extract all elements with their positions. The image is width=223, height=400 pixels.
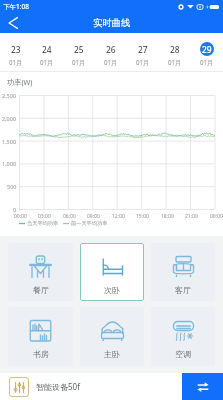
button[interactable]: 客厅: [151, 243, 215, 301]
button[interactable]: 餐厅: [8, 243, 73, 301]
staticText: 书房: [33, 349, 49, 359]
staticText: 01月: [200, 58, 214, 66]
staticText: 01月: [72, 58, 86, 66]
staticText: 09:00: [87, 213, 100, 220]
button[interactable]: 23: [0, 33, 31, 72]
staticText: 1,500: [2, 138, 17, 145]
button[interactable]: 主卧: [80, 307, 144, 366]
staticText: 25: [74, 44, 84, 55]
staticText: 下午1:08: [3, 2, 29, 11]
button[interactable]: 书房: [8, 307, 73, 366]
button[interactable]: 次卧: [80, 243, 144, 301]
staticText: 01月: [168, 58, 182, 66]
staticText: 空调: [175, 349, 191, 359]
staticText: 03:00: [38, 213, 51, 220]
staticText: 客厅: [175, 285, 191, 295]
staticText: 餐厅: [33, 285, 49, 295]
staticText: 功率(W): [7, 77, 33, 87]
staticText: 01月: [9, 58, 23, 66]
button[interactable]: 26: [95, 33, 127, 72]
button[interactable]: 空调: [151, 307, 215, 366]
staticText: 21:00: [185, 213, 198, 220]
staticText: 当天平均功率: [27, 220, 59, 227]
button[interactable]: 24: [31, 33, 63, 72]
staticText: 2,500: [2, 92, 17, 99]
staticText: 27: [138, 44, 148, 55]
button[interactable]: 返回: [1, 13, 25, 33]
staticText: 12:00: [112, 213, 125, 220]
staticText: 次卧: [104, 285, 120, 295]
staticText: 2,000: [2, 115, 17, 122]
staticText: 01月: [40, 58, 54, 66]
staticText: 15:00: [136, 213, 149, 220]
staticText: 实时曲线: [93, 17, 131, 29]
staticText: 前一天平均功率: [71, 220, 108, 227]
staticText: 500: [7, 183, 17, 190]
button[interactable]: 29: [191, 33, 223, 72]
staticText: 23: [11, 44, 21, 55]
staticText: 06:00: [63, 213, 76, 220]
staticText: 29: [202, 44, 212, 55]
staticText: 26: [106, 44, 116, 55]
button[interactable]: 25: [63, 33, 95, 72]
button[interactable]: 切换设备: [182, 373, 223, 400]
staticText: 00:00: [14, 213, 27, 220]
staticText: 18:00: [161, 213, 174, 220]
staticText: 28: [170, 44, 180, 55]
staticText: 24: [42, 44, 52, 55]
staticText: 01月: [104, 58, 118, 66]
staticText: 智能设备50f: [36, 381, 80, 392]
button[interactable]: 智能设备50f: [0, 373, 182, 400]
staticText: 0: [13, 206, 17, 213]
button[interactable]: 27: [127, 33, 159, 72]
staticText: 主卧: [104, 349, 120, 359]
staticText: 01月: [136, 58, 150, 66]
staticText: 00:00: [210, 213, 223, 220]
button[interactable]: 28: [159, 33, 191, 72]
staticText: 1,000: [2, 160, 17, 167]
